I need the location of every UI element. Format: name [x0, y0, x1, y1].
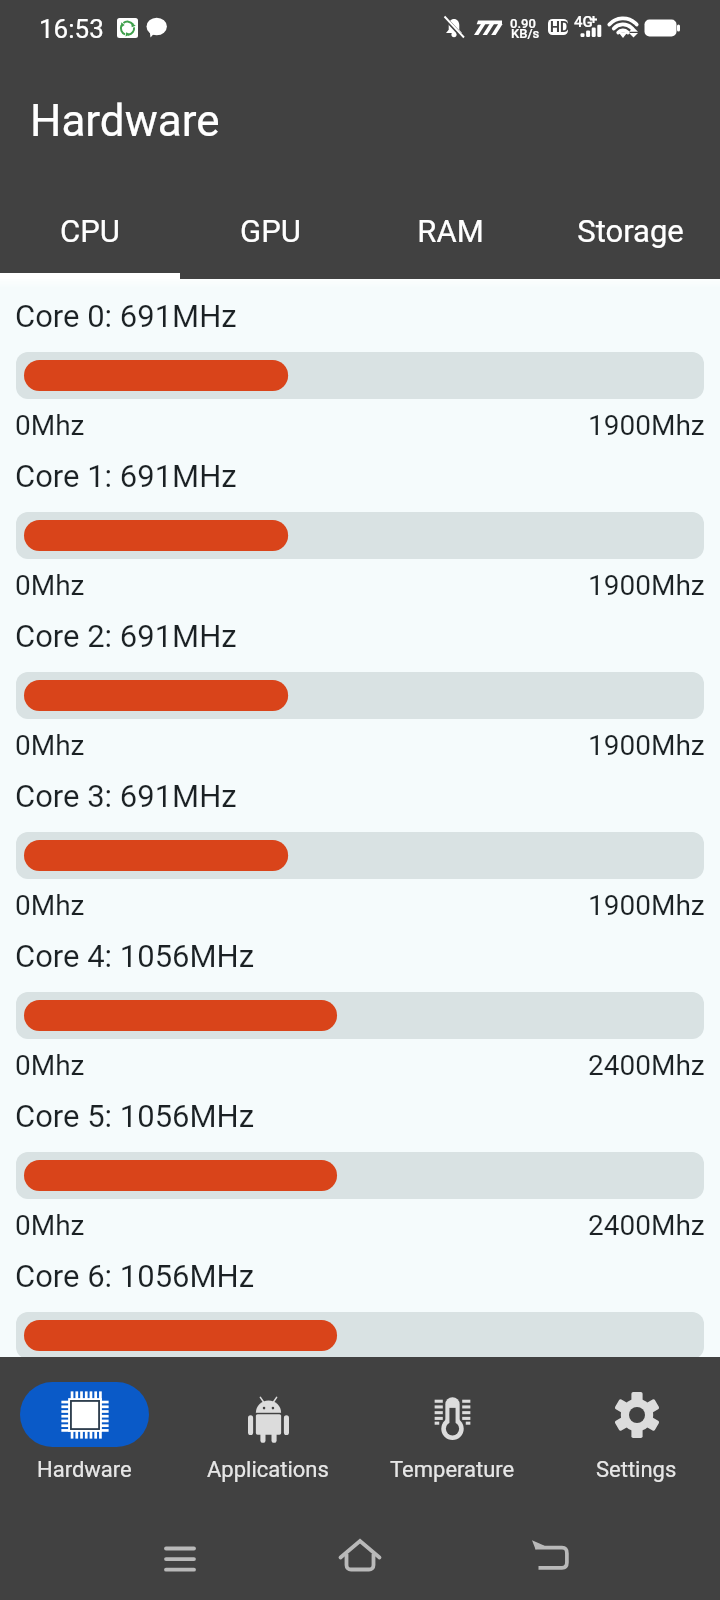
staticText: Core 3: 691MHz — [15, 778, 237, 814]
staticText: CPU — [60, 213, 120, 249]
staticText: 1900Mhz — [588, 889, 705, 922]
staticText: 2400Mhz — [588, 1049, 705, 1082]
staticText: 1900Mhz — [588, 569, 705, 602]
staticText: 0Mhz — [15, 729, 85, 762]
button[interactable]: Hardware — [0, 1357, 168, 1500]
button[interactable]: Core 7: 1056MHz — [0, 1409, 720, 1569]
staticText: 0Mhz — [15, 1049, 85, 1082]
staticText: Core 6: 1056MHz — [15, 1258, 255, 1294]
staticText: RAM — [417, 213, 484, 249]
button[interactable]: GPU — [180, 171, 360, 279]
button[interactable]: RAM — [360, 171, 540, 279]
staticText: Core 0: 691MHz — [15, 298, 237, 334]
staticText: HD — [550, 19, 570, 35]
button[interactable]: Core 2: 691MHz — [0, 609, 720, 769]
button[interactable]: Temperature — [368, 1357, 536, 1500]
staticText: Hardware — [37, 1457, 132, 1483]
staticText: 4G — [574, 13, 593, 31]
button[interactable]: Core 5: 1056MHz — [0, 1089, 720, 1249]
button[interactable]: CPU — [0, 171, 180, 279]
button[interactable]: Core 1: 691MHz — [0, 449, 720, 609]
button[interactable]: Storage — [540, 171, 720, 279]
button[interactable]: Back — [504, 1521, 576, 1593]
button[interactable]: Settings — [552, 1357, 720, 1500]
button[interactable]: Home — [324, 1521, 396, 1593]
button[interactable]: Recent apps — [144, 1521, 216, 1593]
staticText: 0Mhz — [15, 1369, 85, 1402]
button[interactable]: Core 6: 1056MHz — [0, 1249, 720, 1409]
staticText: Settings — [596, 1457, 677, 1483]
staticText: 1900Mhz — [588, 409, 705, 442]
button[interactable]: Core 3: 691MHz — [0, 769, 720, 929]
staticText: Hardware — [30, 95, 220, 147]
button[interactable]: Applications — [184, 1357, 352, 1500]
staticText: 0Mhz — [15, 889, 85, 922]
staticText: Core 7: 1056MHz — [15, 1418, 255, 1454]
staticText: Core 1: 691MHz — [15, 458, 237, 494]
staticText: Applications — [207, 1457, 329, 1483]
staticText: 0Mhz — [15, 409, 85, 442]
staticText: Core 5: 1056MHz — [15, 1098, 255, 1134]
staticText: 16:53 — [39, 14, 104, 44]
staticText: 0Mhz — [15, 569, 85, 602]
staticText: Storage — [577, 213, 684, 249]
button[interactable]: Core 4: 1056MHz — [0, 929, 720, 1089]
staticText: 2400Mhz — [588, 1369, 705, 1402]
staticText: Temperature — [390, 1457, 515, 1483]
staticText: GPU — [240, 213, 301, 249]
staticText: Core 2: 691MHz — [15, 618, 237, 654]
staticText: 2400Mhz — [588, 1209, 705, 1242]
staticText: KB/s — [511, 26, 540, 41]
staticText: 0Mhz — [15, 1209, 85, 1242]
staticText: 0.90 — [510, 16, 536, 31]
button[interactable]: Core 0: 691MHz — [0, 289, 720, 449]
staticText: Core 4: 1056MHz — [15, 938, 255, 974]
staticText: 1900Mhz — [588, 729, 705, 762]
